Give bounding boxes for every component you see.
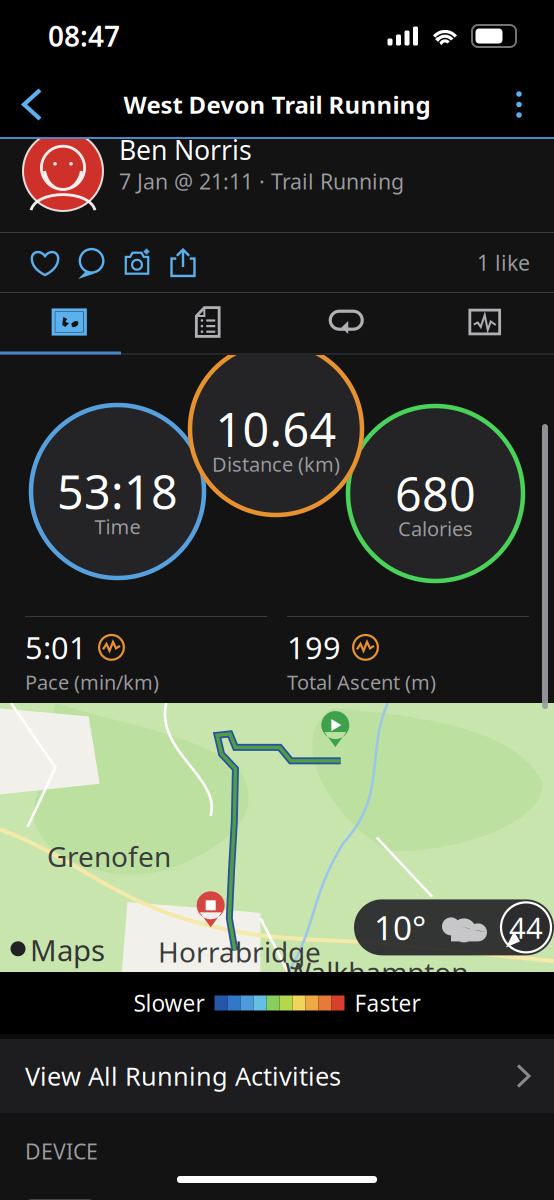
- staticText: Walkhampton: [285, 953, 468, 990]
- staticText: Maps: [30, 930, 105, 969]
- button[interactable]: Add photo: [114, 233, 160, 291]
- button[interactable]: View All Running Activities: [0, 1039, 554, 1113]
- button[interactable]: Share: [160, 233, 206, 291]
- staticText: Horrabridge: [158, 933, 321, 970]
- staticText: Pace (min/km): [25, 669, 159, 695]
- staticText: 10.64: [215, 398, 336, 460]
- button[interactable]: Comment: [68, 233, 114, 291]
- staticText: Grenofen: [47, 837, 171, 875]
- staticText: 1 like: [477, 248, 530, 277]
- staticText: Distance (km): [212, 451, 340, 477]
- staticText: Total Ascent (m): [287, 669, 436, 695]
- staticText: Calories: [398, 515, 473, 542]
- staticText: Faster: [354, 988, 420, 1018]
- staticText: 5:01: [25, 627, 87, 668]
- staticText: 44: [509, 908, 543, 947]
- button[interactable]: Map: [0, 293, 138, 351]
- staticText: 10°: [374, 905, 426, 949]
- button[interactable]: Laps: [277, 293, 415, 351]
- staticText: West Devon Trail Running: [123, 89, 430, 120]
- staticText: Slower: [133, 988, 204, 1018]
- staticText: 199: [287, 627, 341, 668]
- staticText: 08:47: [48, 17, 120, 55]
- staticText: Time: [94, 513, 140, 540]
- staticText: 680: [395, 462, 476, 524]
- staticText: 53:18: [57, 460, 178, 522]
- staticText: Ben Norris: [119, 132, 252, 167]
- staticText: DEVICE: [25, 1137, 98, 1165]
- staticText: View All Running Activities: [25, 1059, 341, 1093]
- button[interactable]: Analysis: [415, 293, 554, 351]
- button[interactable]: More options: [488, 76, 554, 132]
- staticText: 7 Jan @ 21:11 · Trail Running: [119, 167, 404, 195]
- button[interactable]: Back: [0, 74, 62, 135]
- button[interactable]: Like: [22, 233, 68, 291]
- button[interactable]: Splits: [138, 293, 277, 351]
